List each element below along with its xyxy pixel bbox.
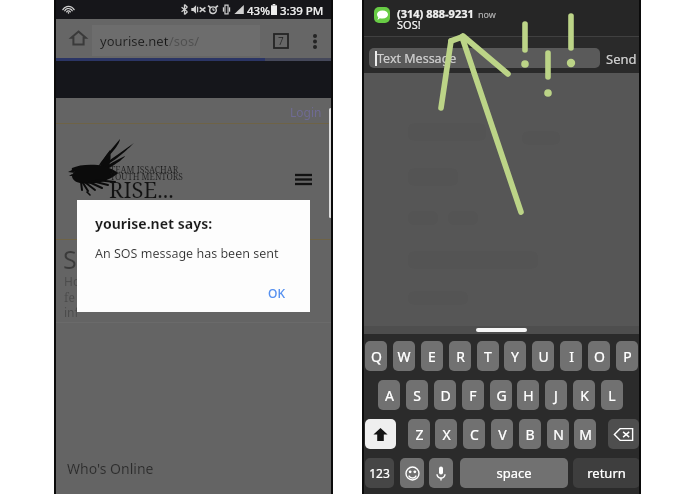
staticText: space (496, 464, 532, 482)
staticText: OK (268, 285, 285, 301)
staticText: B (525, 425, 535, 444)
button[interactable]: N (547, 419, 569, 449)
staticText: A (385, 386, 394, 405)
staticText: 3:39 PM (280, 3, 324, 19)
staticText: L (608, 386, 616, 405)
staticText: RISE... (109, 174, 174, 204)
button[interactable]: V (491, 419, 513, 449)
button[interactable]: Send (603, 46, 640, 72)
button[interactable]: OK (263, 281, 290, 305)
button[interactable]: D (434, 380, 456, 410)
button[interactable]: H (517, 380, 539, 410)
button[interactable]: T (477, 341, 499, 371)
staticText: Who's Online (67, 459, 154, 478)
button[interactable]: C (463, 419, 485, 449)
staticText: G (496, 386, 507, 405)
staticText: inf (64, 304, 79, 320)
staticText: O (594, 347, 605, 366)
staticText: YOUTH MENTORS (110, 171, 183, 183)
staticText: E (428, 347, 436, 366)
staticText: /sos/ (169, 32, 199, 50)
staticText: W (397, 347, 411, 366)
staticText: Send (606, 50, 637, 68)
button[interactable]: P (616, 341, 638, 371)
button[interactable]: G (490, 380, 512, 410)
staticText: M (579, 425, 592, 444)
staticText: V (498, 425, 507, 444)
button[interactable]: space (460, 458, 568, 488)
button[interactable]: Menu (288, 166, 318, 192)
staticText: C (470, 425, 479, 444)
button[interactable]: Y (504, 341, 526, 371)
staticText: J (554, 386, 558, 405)
staticText: H (523, 386, 534, 405)
button[interactable]: Z (408, 419, 430, 449)
button[interactable]: A (378, 380, 400, 410)
staticText: yourise.net says: (95, 214, 213, 233)
button[interactable]: M (574, 419, 596, 449)
staticText: An SOS message has been sent (95, 245, 279, 262)
button[interactable]: K (573, 380, 595, 410)
button[interactable]: Q (365, 341, 387, 371)
staticText: Z (415, 425, 424, 444)
button[interactable]: J (545, 380, 567, 410)
staticText: D (440, 386, 451, 405)
staticText: yourise.net (100, 32, 169, 50)
staticText: 123 (369, 465, 390, 481)
button[interactable]: Backspace (608, 419, 639, 449)
staticText: fe (64, 289, 75, 305)
button[interactable]: F (462, 380, 484, 410)
staticText: Y (511, 347, 519, 366)
staticText: SOS! (397, 17, 421, 32)
staticText: now (478, 8, 496, 20)
staticText: K (580, 386, 589, 405)
button[interactable]: Shift (365, 419, 396, 449)
staticText: return (587, 464, 626, 482)
staticText: Text Message (377, 50, 457, 67)
staticText: TEAM ISSACHAR (110, 164, 179, 176)
button[interactable]: Emoji (400, 458, 424, 488)
staticText: F (469, 386, 477, 405)
staticText: S (413, 386, 421, 405)
staticText: (314) 888-9231 (397, 6, 474, 21)
staticText: P (623, 347, 632, 366)
button[interactable]: E (421, 341, 443, 371)
button[interactable]: X (435, 419, 457, 449)
staticText: 7 (278, 34, 284, 48)
staticText: X (442, 425, 451, 444)
button[interactable]: Tabs: 7 (268, 28, 294, 54)
button[interactable]: Text Message (369, 48, 600, 68)
button[interactable]: I (560, 341, 582, 371)
staticText: Ho (64, 273, 81, 289)
staticText: 43% (247, 3, 270, 19)
button[interactable]: Home (62, 22, 94, 54)
button[interactable]: B (519, 419, 541, 449)
button[interactable]: L (601, 380, 623, 410)
button[interactable]: O (588, 341, 610, 371)
button[interactable]: R (449, 341, 471, 371)
staticText: T (484, 347, 492, 366)
button[interactable]: 123 (365, 458, 394, 488)
button[interactable]: More options (302, 28, 328, 54)
button[interactable]: Dictation (429, 458, 453, 488)
button[interactable]: yourise.net (92, 25, 260, 56)
staticText: N (553, 425, 564, 444)
staticText: Q (371, 347, 382, 366)
button[interactable]: Login (290, 104, 322, 120)
button[interactable]: S (406, 380, 428, 410)
staticText: I (569, 347, 574, 366)
button[interactable]: U (532, 341, 554, 371)
staticText: S (63, 242, 77, 276)
staticText: R (456, 347, 465, 366)
staticText: U (538, 347, 549, 366)
button[interactable]: W (393, 341, 415, 371)
button[interactable]: return (573, 458, 640, 488)
